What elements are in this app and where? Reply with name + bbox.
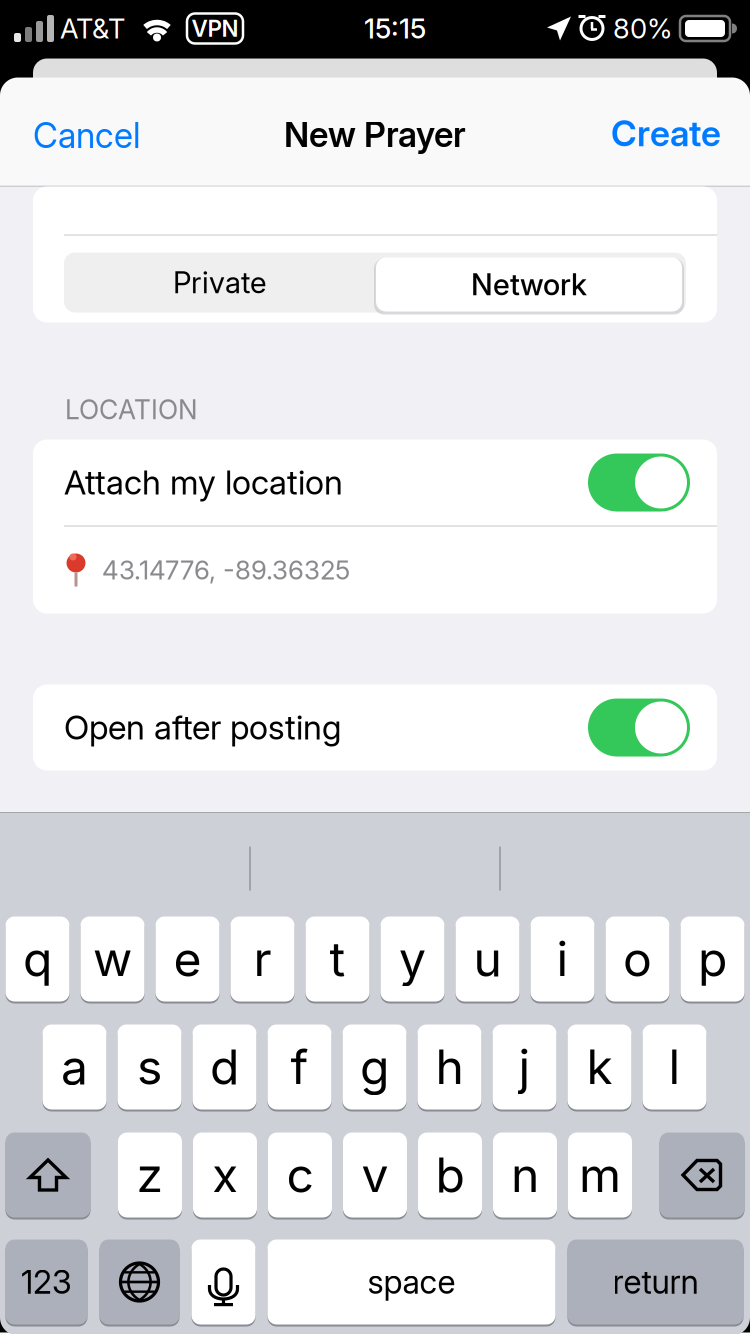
staticText: k [586,1038,612,1096]
staticText: c [286,1146,313,1204]
staticText: Attach my location [64,462,343,503]
button[interactable]: Dictate [191,1238,255,1325]
button[interactable]: q [5,915,69,1002]
staticText: return [612,1262,698,1301]
button[interactable]: h [417,1023,481,1110]
staticText: 43.14776, -89.36325 [102,554,350,586]
button[interactable]: w [80,915,144,1002]
button[interactable]: Next keyboard [99,1238,179,1325]
staticText: h [435,1038,463,1096]
staticText: space [367,1262,455,1301]
staticText: o [623,930,652,988]
staticText: z [136,1146,163,1204]
button[interactable]: n [493,1131,557,1218]
staticText: a [61,1038,88,1096]
staticText: u [473,930,501,988]
button[interactable]: j [492,1023,556,1110]
staticText: Private [173,265,267,300]
button[interactable]: f [267,1023,331,1110]
button[interactable]: 123 [5,1238,87,1325]
button[interactable]: g [342,1023,406,1110]
staticText: t [329,930,345,988]
staticText: f [290,1038,308,1096]
button[interactable]: k [567,1023,631,1110]
button[interactable]: x [193,1131,257,1218]
staticText: v [361,1146,388,1204]
button[interactable]: Private [66,254,374,310]
button[interactable]: m [568,1131,632,1218]
staticText: r [253,930,271,988]
button[interactable]: Delete [659,1131,744,1218]
staticText: x [212,1146,238,1204]
button[interactable]: Create [589,103,721,163]
button[interactable]: Network [373,254,685,314]
staticText: q [23,930,52,988]
staticText: e [173,930,201,988]
button[interactable]: y [380,915,444,1002]
button[interactable]: a [42,1023,106,1110]
staticText: g [360,1038,389,1096]
staticText: LOCATION [65,393,198,425]
button[interactable]: Shift [5,1131,90,1218]
button[interactable]: l [642,1023,706,1110]
button[interactable]: d [192,1023,256,1110]
staticText: Open after posting [64,707,341,748]
staticText: p [698,930,727,988]
staticText: l [668,1038,680,1096]
staticText: n [511,1146,539,1204]
button[interactable]: v [343,1131,407,1218]
staticText: d [210,1038,239,1096]
button[interactable]: b [418,1131,482,1218]
button[interactable]: i [530,915,594,1002]
button[interactable]: s [117,1023,181,1110]
button[interactable]: c [268,1131,332,1218]
staticText: s [137,1038,162,1096]
staticText: i [556,930,568,988]
staticText: y [399,930,426,988]
button[interactable]: return [567,1238,743,1325]
staticText: Network [471,267,587,302]
button[interactable]: r [230,915,294,1002]
staticText: b [435,1146,464,1204]
staticText: 123 [21,1262,72,1301]
staticText: j [518,1038,530,1096]
button[interactable]: e [155,915,219,1002]
button[interactable]: o [605,915,669,1002]
staticText: AT&T [60,12,125,45]
staticText: w [93,930,132,988]
staticText: 15:15 [364,12,426,45]
staticText: Cancel [33,115,141,156]
button[interactable]: space [267,1238,555,1325]
button[interactable]: u [455,915,519,1002]
button[interactable]: Cancel [33,105,163,165]
staticText: VPN [191,15,238,42]
staticText: New Prayer [284,114,466,155]
staticText: Create [611,112,721,155]
button[interactable]: p [680,915,744,1002]
staticText: 80% [613,12,673,45]
button[interactable]: t [305,915,369,1002]
staticText: m [579,1146,621,1204]
button[interactable]: z [118,1131,182,1218]
